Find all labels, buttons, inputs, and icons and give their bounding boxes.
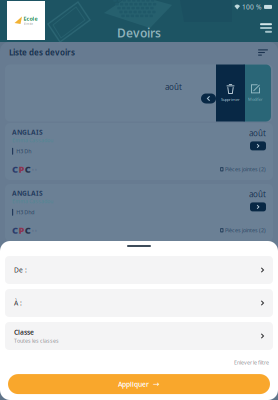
staticText: Emma Cassadou	[12, 198, 53, 205]
button[interactable]: Ouvrir le devoir	[250, 141, 266, 150]
staticText: Ecole	[23, 15, 37, 22]
staticText: août	[249, 189, 266, 199]
staticText: C	[25, 163, 31, 175]
staticText: + +	[32, 166, 37, 172]
staticText: Modifier	[248, 96, 263, 102]
staticText: ANGLAIS	[12, 189, 43, 198]
staticText: Pièces jointes (2)	[225, 166, 266, 173]
button[interactable]: Enlever le filtre	[234, 359, 269, 366]
staticText: août	[249, 128, 266, 138]
staticText: →	[153, 379, 160, 389]
staticText: De :	[14, 266, 27, 274]
staticText: Devoirs	[117, 25, 161, 41]
staticText: + +	[32, 227, 37, 233]
staticText: C	[12, 224, 18, 236]
staticText: H3 Dhd	[16, 209, 34, 216]
button[interactable]: Fermer les actions	[201, 93, 216, 103]
button[interactable]: Ouvrir le devoir	[250, 202, 266, 211]
button[interactable]: De :	[5, 256, 273, 284]
staticText: Emma Cassadou	[12, 137, 53, 144]
staticText: Appliquer	[118, 380, 149, 389]
staticText: C	[12, 163, 18, 175]
staticText: Toutes les classes	[14, 337, 59, 344]
staticText: ANGLAIS	[12, 128, 43, 137]
staticText: Classe	[14, 328, 34, 337]
staticText: Liste des devoirs	[9, 47, 75, 58]
staticText: Supprimer	[221, 97, 240, 102]
staticText: Enlever le filtre	[234, 359, 269, 366]
staticText: P	[18, 224, 24, 236]
button[interactable]: À :	[5, 289, 273, 317]
button[interactable]: Menu	[242, 19, 272, 37]
button[interactable]: Classe	[5, 322, 273, 350]
staticText: À :	[14, 299, 22, 307]
button[interactable]: Appliquer	[8, 374, 270, 394]
button[interactable]: Modifier	[240, 64, 271, 121]
staticText: 100 %	[242, 2, 262, 11]
staticText: C	[25, 224, 31, 236]
staticText: août	[165, 81, 182, 92]
staticText: Pièces jointes (2)	[225, 227, 266, 234]
staticText: H3 Dh	[16, 148, 31, 155]
staticText: directe	[23, 22, 33, 26]
button[interactable]: Filtrer	[257, 47, 269, 58]
button[interactable]: Supprimer	[216, 64, 245, 121]
staticText: P	[18, 163, 24, 175]
